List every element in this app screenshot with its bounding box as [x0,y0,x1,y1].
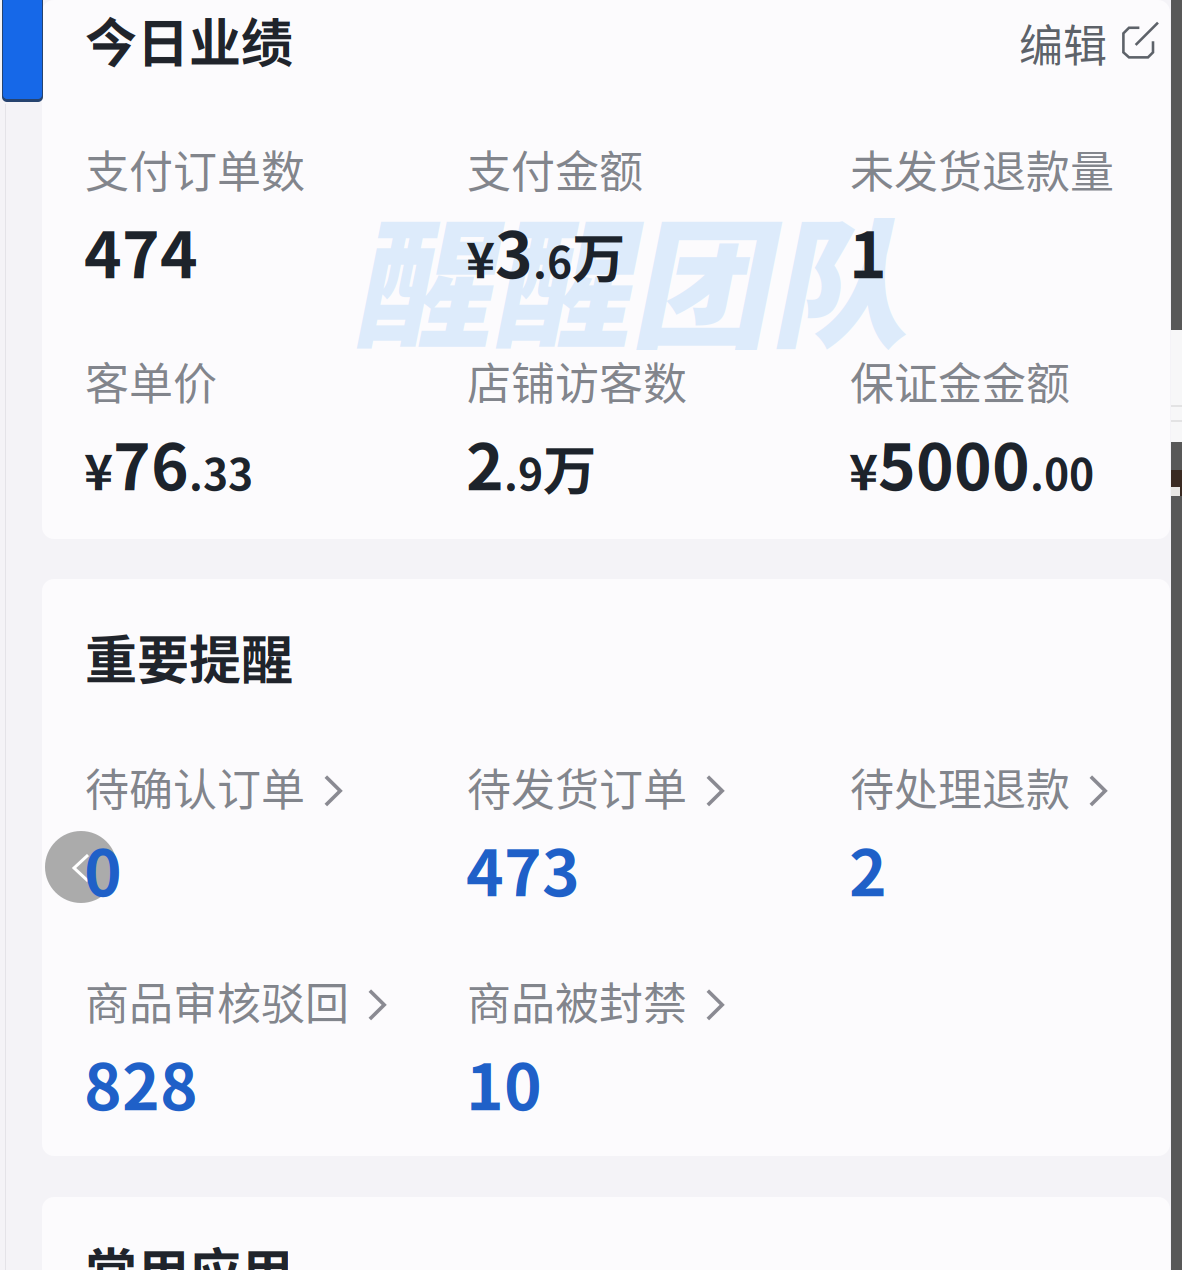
staticText: 重要提醒 [85,619,293,694]
staticText: 473 [466,822,580,915]
staticText: 10 [466,1036,542,1129]
staticText: .6 [533,229,572,290]
staticText: 0 [84,822,122,915]
staticText: 2 [466,416,504,509]
staticText: 客单价 [85,349,217,413]
staticText: .00 [1030,441,1094,502]
staticText: 待发货订单 [467,755,687,819]
button[interactable]: 编辑 [1019,11,1165,75]
staticText: 待确认订单 [85,755,305,819]
staticText: ¥ [849,433,878,504]
staticText: 3 [495,204,533,297]
button[interactable]: Back [45,831,117,903]
staticText: 醒醒团队 [352,175,908,376]
button[interactable]: 商品被封禁 [0,0,257,93]
staticText: 万 [572,216,625,294]
staticText: 店铺访客数 [467,349,687,413]
button[interactable]: 待确认订单 [0,0,257,93]
staticText: 1 [849,204,887,297]
staticText: 5000 [878,416,1030,509]
staticText: 万 [543,428,596,506]
staticText: 支付订单数 [85,137,305,201]
staticText: 商品审核驳回 [85,969,349,1033]
staticText: 474 [84,204,198,297]
staticText: 常用应用 [85,1232,293,1270]
staticText: 支付金额 [467,137,643,201]
button[interactable]: 待发货订单 [0,0,257,93]
staticText: .33 [189,441,253,502]
button[interactable]: 待处理退款 [0,0,257,93]
staticText: 商品被封禁 [467,969,687,1033]
staticText: ¥ [466,221,495,292]
staticText: ¥ [84,433,113,504]
staticText: 76 [113,416,189,509]
staticText: 保证金金额 [850,349,1070,413]
button[interactable]: 商品审核驳回 [0,0,301,93]
staticText: 待处理退款 [850,755,1070,819]
staticText: 2 [849,822,887,915]
staticText: 未发货退款量 [850,137,1114,201]
staticText: 今日业绩 [85,2,293,77]
staticText: 编辑 [1019,11,1107,75]
staticText: .9 [504,441,543,502]
staticText: 828 [84,1036,198,1129]
